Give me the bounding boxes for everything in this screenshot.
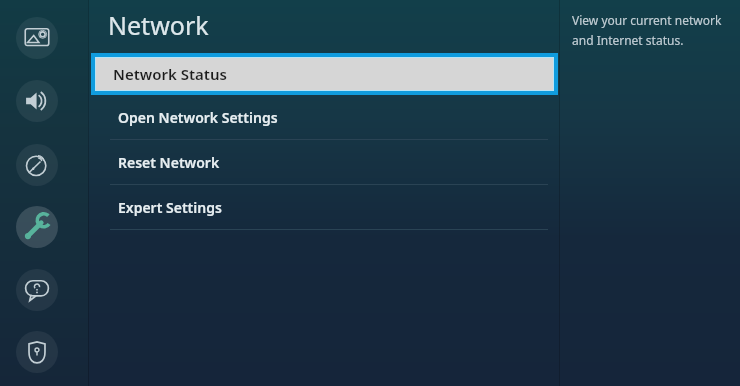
button[interactable]: Network Status bbox=[91, 53, 558, 95]
staticText: Expert Settings bbox=[118, 198, 222, 217]
staticText: Open Network Settings bbox=[118, 108, 278, 127]
button[interactable]: Privacy bbox=[16, 331, 58, 373]
button[interactable]: Network settings bbox=[16, 206, 58, 248]
button[interactable]: Expert Settings bbox=[91, 185, 558, 229]
staticText: Network bbox=[108, 8, 209, 42]
button[interactable]: Support bbox=[16, 269, 58, 311]
button[interactable]: Broadcasting bbox=[16, 144, 58, 186]
staticText: View your current network and Internet s… bbox=[572, 12, 728, 49]
staticText: Network Status bbox=[113, 64, 227, 84]
button[interactable]: Reset Network bbox=[91, 140, 558, 184]
staticText: Reset Network bbox=[118, 153, 220, 172]
button[interactable]: Picture bbox=[16, 17, 58, 59]
button[interactable]: Sound bbox=[16, 80, 58, 122]
button[interactable]: Open Network Settings bbox=[91, 95, 558, 139]
